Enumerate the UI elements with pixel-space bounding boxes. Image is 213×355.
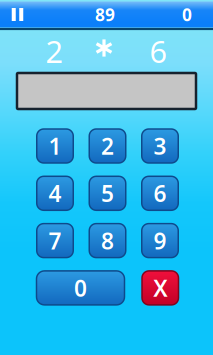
staticText: 2 [101, 131, 114, 161]
staticText: 3 [153, 131, 166, 161]
staticText: 89 [95, 3, 115, 26]
staticText: 6 [153, 178, 166, 208]
button[interactable]: 4 [37, 176, 73, 210]
button[interactable]: 8 [89, 224, 126, 258]
staticText: 1 [48, 131, 61, 161]
staticText: 7 [48, 225, 61, 256]
staticText: 6 [149, 31, 167, 71]
button[interactable]: 0 [36, 271, 124, 305]
button[interactable]: X [142, 271, 178, 305]
button[interactable]: 1 [37, 129, 73, 163]
staticText: 2 [45, 31, 63, 71]
button[interactable]: 9 [142, 224, 178, 258]
button[interactable]: 5 [89, 176, 126, 210]
staticText: 4 [48, 178, 61, 208]
button[interactable]: 2 [89, 129, 126, 163]
staticText: 9 [153, 225, 166, 256]
staticText: X [153, 273, 167, 303]
staticText: 5 [101, 178, 114, 208]
staticText: 8 [101, 225, 114, 256]
button[interactable]: 3 [142, 129, 178, 163]
staticText: 0 [182, 3, 192, 26]
button[interactable]: 7 [37, 224, 73, 258]
button[interactable]: 6 [142, 176, 178, 210]
staticText [102, 31, 110, 71]
button[interactable]: Pause [0, 1, 35, 27]
staticText: 0 [74, 273, 87, 303]
